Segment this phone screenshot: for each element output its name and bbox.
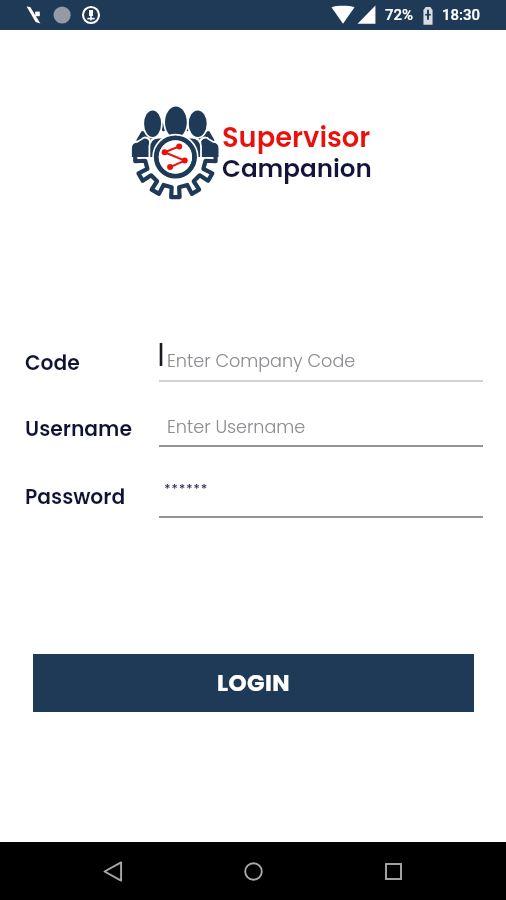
button[interactable]: Enter Company Code [159,336,483,387]
button[interactable]: Recent apps [363,842,423,900]
button[interactable]: Home [223,842,283,900]
button[interactable]: Back [83,842,143,900]
button[interactable]: Enter Username [159,402,483,452]
staticText: Enter Username [167,415,306,440]
staticText: Username [25,415,132,443]
staticText: 72% [385,6,414,24]
staticText: Supervisor [222,118,371,156]
staticText: ****** [164,479,209,497]
staticText: Code [25,349,80,377]
staticText: Password [25,483,126,511]
staticText: 18:30 [442,6,481,24]
staticText: Campanion [222,151,372,185]
button[interactable]: LOGIN [33,654,474,712]
staticText: LOGIN [217,667,291,699]
staticText: Enter Company Code [167,349,356,374]
button[interactable]: ****** [159,470,483,523]
